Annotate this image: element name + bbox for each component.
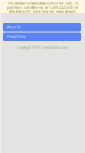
button[interactable]: About Us xyxy=(3,23,81,31)
staticText: Privacy Policy xyxy=(7,35,25,39)
staticText: Copyright © 2017 smadsoftair.com xyxy=(17,45,68,49)
staticText: The domain smadsoftair.com is for sale. … xyxy=(6,1,78,13)
staticText: About Us xyxy=(7,25,20,29)
button[interactable]: Privacy Policy xyxy=(3,32,81,41)
